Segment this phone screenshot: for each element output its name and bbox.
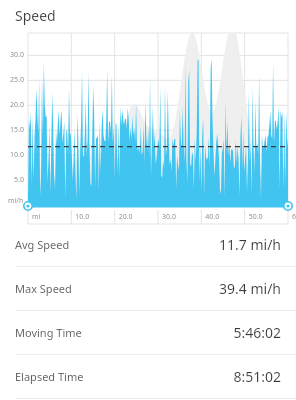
- staticText: Speed: [15, 6, 56, 25]
- button[interactable]: Avg Speed: [0, 223, 296, 266]
- staticText: Moving Time: [15, 325, 82, 340]
- button[interactable]: Elapsed Time: [0, 355, 296, 398]
- staticText: Max Speed: [15, 281, 72, 296]
- staticText: 5:46:02: [233, 323, 281, 342]
- staticText: 8:51:02: [233, 367, 281, 386]
- staticText: Elapsed Time: [15, 369, 84, 384]
- staticText: 11.7 mi/h: [219, 235, 281, 254]
- staticText: 39.4 mi/h: [219, 279, 281, 298]
- button[interactable]: Moving Time: [0, 311, 296, 354]
- button[interactable]: Max Speed: [0, 267, 296, 310]
- staticText: Avg Speed: [15, 237, 70, 252]
